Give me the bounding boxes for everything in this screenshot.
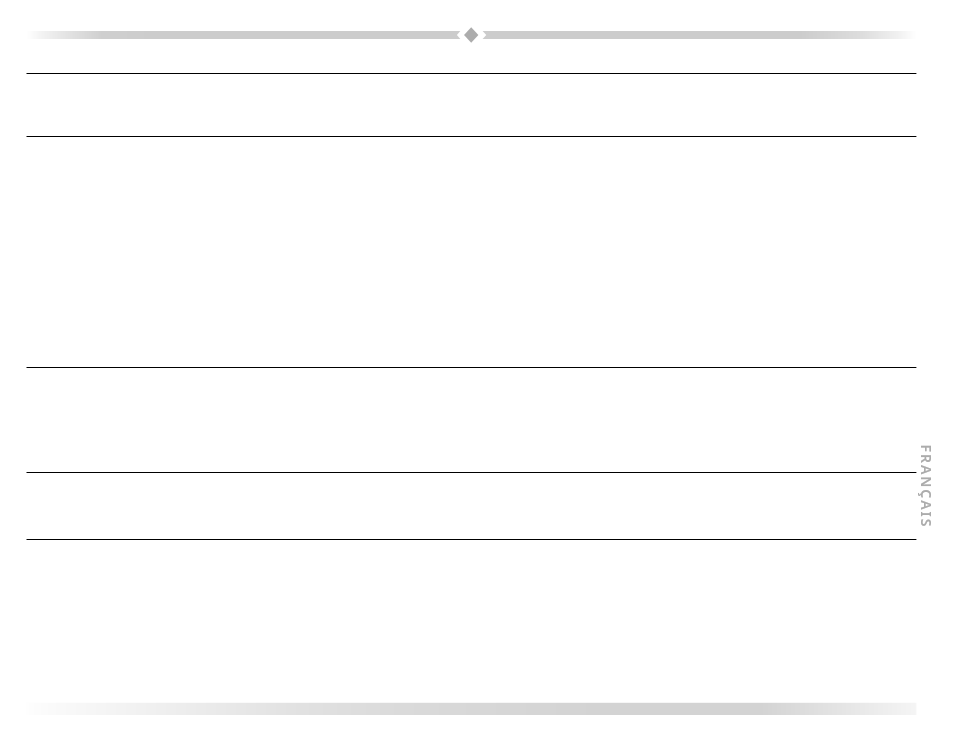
button[interactable]: FRANÇAIS bbox=[916, 444, 935, 528]
button[interactable]: Row 3 bbox=[27, 658, 917, 737]
button[interactable]: Row 2 bbox=[27, 198, 917, 427]
